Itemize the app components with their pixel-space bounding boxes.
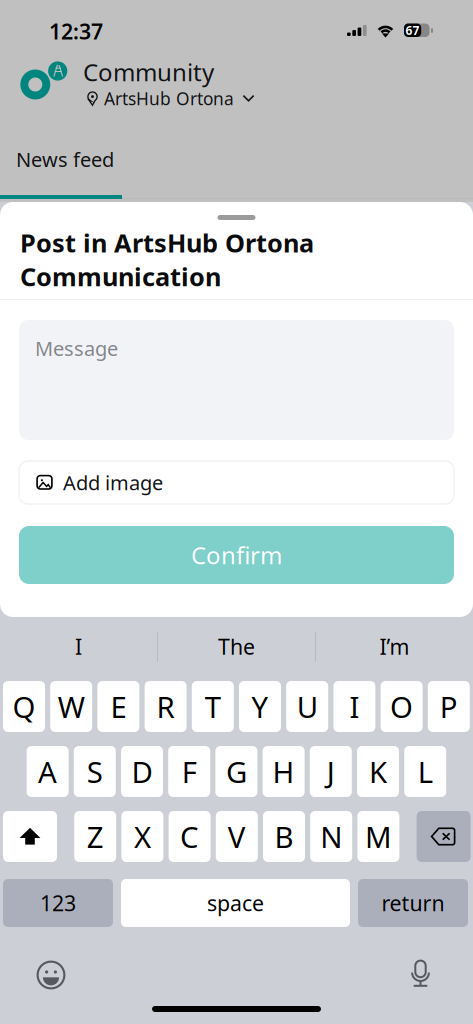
button[interactable]: Z — [74, 811, 116, 862]
staticText: return — [381, 889, 444, 917]
button[interactable]: K — [357, 746, 399, 797]
staticText: ArtsHub Ortona — [104, 87, 234, 110]
button[interactable]: B — [263, 811, 305, 862]
button[interactable]: return — [358, 879, 468, 927]
button[interactable]: Message — [19, 320, 454, 440]
staticText: U — [297, 687, 318, 726]
staticText: Confirm — [191, 539, 282, 571]
button[interactable]: D — [121, 746, 163, 797]
button[interactable]: L — [404, 746, 446, 797]
button[interactable]: I’m — [316, 624, 473, 669]
staticText: X — [134, 817, 151, 856]
button[interactable]: The — [158, 624, 315, 669]
button[interactable]: Confirm — [19, 526, 454, 584]
staticText: C — [180, 817, 199, 856]
staticText: B — [274, 817, 293, 856]
staticText: space — [207, 889, 264, 917]
button[interactable]: N — [310, 811, 352, 862]
button[interactable]: M — [357, 811, 399, 862]
button[interactable]: A — [27, 746, 69, 797]
staticText: Q — [12, 687, 35, 726]
staticText: A — [38, 752, 57, 791]
staticText: J — [327, 752, 335, 791]
button[interactable]: V — [216, 811, 258, 862]
staticText: I — [349, 687, 359, 726]
staticText: 123 — [40, 889, 76, 917]
button[interactable]: 123 — [3, 879, 113, 927]
button[interactable]: P — [428, 681, 470, 732]
button[interactable]: Q — [3, 681, 45, 732]
staticText: Z — [87, 817, 104, 856]
staticText: News feed — [16, 146, 114, 173]
staticText: T — [205, 687, 221, 726]
staticText: L — [418, 752, 433, 791]
button[interactable]: U — [286, 681, 328, 732]
button[interactable]: J — [310, 746, 352, 797]
button[interactable]: X — [121, 811, 163, 862]
staticText: Post in ArtsHub Ortona Communication — [20, 226, 314, 293]
staticText: Add image — [63, 469, 163, 496]
staticText: Y — [251, 687, 268, 726]
staticText: K — [369, 752, 387, 791]
button[interactable]: C — [169, 811, 211, 862]
staticText: M — [365, 817, 392, 856]
button[interactable]: Delete — [417, 811, 471, 862]
staticText: G — [226, 752, 247, 791]
staticText: P — [440, 687, 458, 726]
staticText: W — [58, 687, 85, 726]
staticText: F — [182, 752, 197, 791]
button[interactable]: Shift — [3, 811, 57, 862]
staticText: 67 — [406, 22, 420, 38]
staticText: O — [390, 687, 413, 726]
staticText: R — [157, 687, 175, 726]
staticText: 12:37 — [49, 17, 103, 45]
button[interactable]: T — [192, 681, 234, 732]
staticText: Community — [83, 56, 214, 88]
staticText: H — [273, 752, 295, 791]
button[interactable]: space — [121, 879, 350, 927]
staticText: N — [320, 817, 342, 856]
staticText: V — [228, 817, 246, 856]
button[interactable]: H — [263, 746, 305, 797]
staticText: I’m — [379, 632, 409, 661]
button[interactable]: W — [50, 681, 92, 732]
button[interactable]: S — [74, 746, 116, 797]
staticText: E — [110, 687, 126, 726]
button[interactable]: I — [333, 681, 375, 732]
button[interactable]: Y — [239, 681, 281, 732]
staticText: The — [218, 632, 255, 661]
button[interactable]: Emoji keyboard — [36, 960, 66, 990]
button[interactable]: F — [168, 746, 210, 797]
button[interactable]: Add image — [19, 461, 454, 504]
button[interactable]: R — [145, 681, 187, 732]
button[interactable]: I — [0, 624, 157, 669]
staticText: S — [87, 752, 103, 791]
staticText: D — [131, 752, 152, 791]
button[interactable]: O — [381, 681, 423, 732]
staticText: I — [75, 632, 82, 661]
button[interactable]: E — [97, 681, 139, 732]
button[interactable]: Dictation — [406, 959, 435, 990]
staticText: Message — [35, 335, 118, 362]
button[interactable]: G — [215, 746, 257, 797]
